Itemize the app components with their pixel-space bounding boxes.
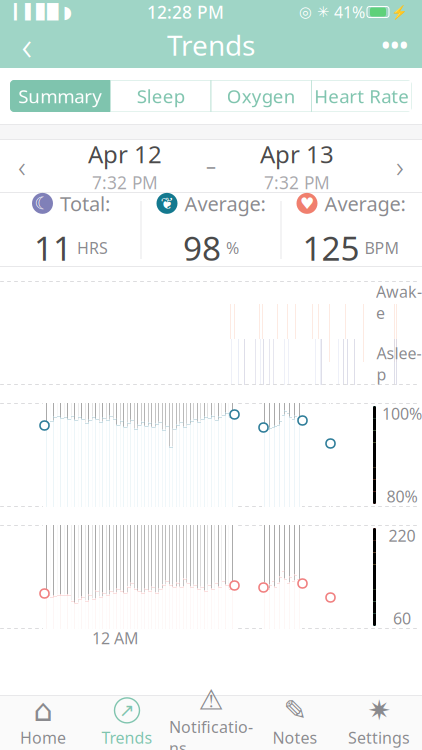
staticText: 12:28 PM: [147, 0, 224, 23]
staticText: %: [226, 237, 239, 258]
staticText: 220: [388, 525, 415, 546]
button[interactable]: Summary: [10, 80, 110, 112]
staticText: ⌂: [33, 693, 52, 728]
staticText: ‹: [21, 18, 32, 71]
staticText: ⚠: [198, 684, 223, 716]
staticText: ↗: [119, 700, 135, 721]
staticText: ‹: [18, 146, 26, 185]
staticText: 60: [393, 608, 411, 629]
button[interactable]: Previous range: [0, 140, 44, 192]
staticText: 125: [302, 226, 359, 270]
staticText: ▎▌▊█: [14, 4, 58, 20]
staticText: Notifications: [169, 716, 253, 750]
staticText: Total:: [60, 190, 110, 217]
button[interactable]: Heart Rate: [311, 80, 412, 112]
staticText: ›: [396, 146, 404, 185]
button[interactable]: More options: [368, 23, 422, 67]
staticText: BPM: [364, 237, 399, 258]
staticText: Awake: [376, 281, 422, 323]
staticText: Apr 13: [260, 138, 334, 170]
staticText: 7:32 PM: [92, 171, 158, 194]
staticText: Heart Rate: [314, 84, 409, 108]
button[interactable]: ⌂: [1, 697, 85, 749]
staticText: ◎: [299, 4, 312, 20]
staticText: Asleep: [376, 342, 421, 385]
button[interactable]: Oxygen: [211, 80, 311, 112]
staticText: ☾: [34, 193, 50, 213]
staticText: 41%: [334, 1, 365, 23]
staticText: 100%: [382, 403, 422, 424]
staticText: •••: [381, 30, 408, 60]
staticText: ⚡: [391, 4, 408, 20]
staticText: Trends: [167, 26, 255, 64]
staticText: 98: [183, 226, 221, 270]
button[interactable]: ↗: [85, 697, 169, 749]
button[interactable]: ✷: [337, 697, 421, 749]
staticText: 80%: [386, 486, 417, 507]
staticText: 11: [34, 226, 72, 270]
button[interactable]: ✎: [253, 697, 337, 749]
staticText: Apr 12: [88, 138, 162, 170]
staticText: ♥: [300, 194, 314, 212]
staticText: Sleep: [137, 84, 185, 108]
staticText: Trends: [101, 727, 152, 748]
staticText: Average:: [184, 190, 265, 217]
staticText: ✳: [317, 4, 329, 20]
staticText: ❦: [160, 194, 173, 212]
staticText: 12 AM: [92, 627, 139, 649]
staticText: ✎: [283, 694, 306, 726]
staticText: ◗: [63, 2, 72, 22]
staticText: Notes: [272, 727, 317, 748]
staticText: Oxygen: [227, 84, 296, 108]
staticText: –: [206, 153, 216, 179]
staticText: Summary: [18, 84, 102, 108]
staticText: Home: [20, 727, 66, 748]
button[interactable]: Back: [0, 23, 54, 67]
button[interactable]: ⚠: [169, 697, 253, 749]
staticText: 7:32 PM: [264, 171, 330, 194]
staticText: Settings: [348, 727, 410, 748]
staticText: ✷: [367, 694, 390, 726]
button[interactable]: Next range: [378, 140, 422, 192]
button[interactable]: Sleep: [110, 80, 211, 112]
staticText: HRS: [77, 237, 108, 258]
staticText: Average:: [324, 190, 405, 217]
